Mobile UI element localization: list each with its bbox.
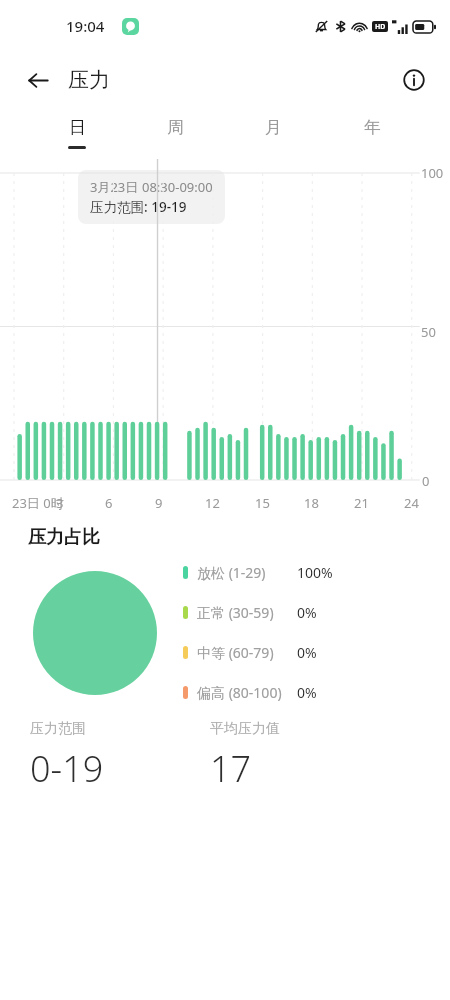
staticText: 偏高 (80-100) (197, 683, 282, 702)
button[interactable]: Information (394, 60, 434, 100)
staticText: 9 (155, 494, 163, 512)
staticText: 100% (297, 563, 333, 582)
staticText: 日 (69, 117, 86, 138)
staticText: 0% (297, 643, 317, 662)
button[interactable]: 周 (126, 108, 224, 162)
button[interactable]: 月 (224, 108, 323, 162)
staticText: 3 (56, 494, 64, 512)
staticText: 压力范围 (30, 720, 86, 738)
button[interactable]: Back (18, 60, 58, 100)
staticText: 17 (210, 744, 252, 793)
staticText: 年 (364, 117, 381, 138)
staticText: 月 (265, 117, 282, 138)
staticText: 压力范围: 19-19 (90, 198, 187, 216)
staticText: 50 (421, 323, 436, 341)
staticText: 中等 (60-79) (197, 643, 274, 662)
staticText: 3月23日 (90, 178, 142, 196)
staticText: 21 (354, 494, 369, 512)
staticText: HD (375, 22, 386, 32)
staticText: 19:04 (66, 16, 105, 36)
staticText: 0% (297, 683, 317, 702)
staticText: 23日 0时 (12, 494, 64, 512)
staticText: 平均压力值 (210, 720, 280, 738)
staticText: 0-19 (30, 744, 104, 793)
staticText: 0 (422, 472, 430, 490)
staticText: 100 (421, 164, 444, 182)
staticText: 08:30-09:00 (142, 178, 213, 196)
staticText: 压力 (68, 67, 110, 93)
staticText: 15 (255, 494, 270, 512)
staticText: 24 (404, 494, 419, 512)
staticText: 6 (105, 494, 113, 512)
staticText: 12 (205, 494, 220, 512)
button[interactable]: 日 (28, 108, 126, 162)
staticText: 周 (167, 117, 184, 138)
staticText: 放松 (1-29) (197, 563, 266, 582)
staticText: 正常 (30-59) (197, 603, 274, 622)
staticText: 18 (304, 494, 319, 512)
staticText: 压力占比 (28, 526, 100, 549)
staticText: 0% (297, 603, 317, 622)
button[interactable]: 年 (323, 108, 422, 162)
